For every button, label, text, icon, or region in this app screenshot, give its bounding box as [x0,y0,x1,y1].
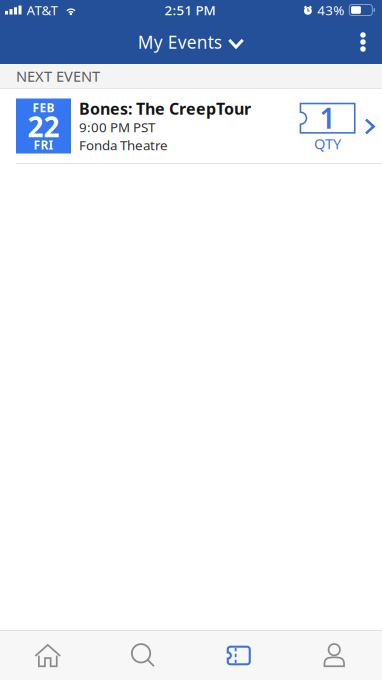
staticText: My Events [138,30,222,53]
staticText: 43% [317,1,344,19]
staticText: 9:00 PM PST [79,118,155,136]
staticText: 2:51 PM [164,1,215,19]
staticText: AT&T [26,1,57,19]
button[interactable]: My Events [126,20,256,64]
button[interactable]: Account [286,631,382,680]
button[interactable]: Home [0,631,95,680]
staticText: Fonda Theatre [79,136,168,154]
staticText: QTY [314,134,341,153]
button[interactable]: More options [338,20,382,64]
button[interactable]: Search [95,631,191,680]
staticText: Bones: The CreepTour [79,98,251,119]
button[interactable]: My Events [191,631,286,680]
staticText: FEB [32,100,54,115]
staticText: 22 [27,108,59,145]
staticText: NEXT EVENT [16,66,100,86]
staticText: 1 [320,99,336,136]
staticText: FRI [33,137,53,153]
button[interactable]: FEB [0,89,382,163]
